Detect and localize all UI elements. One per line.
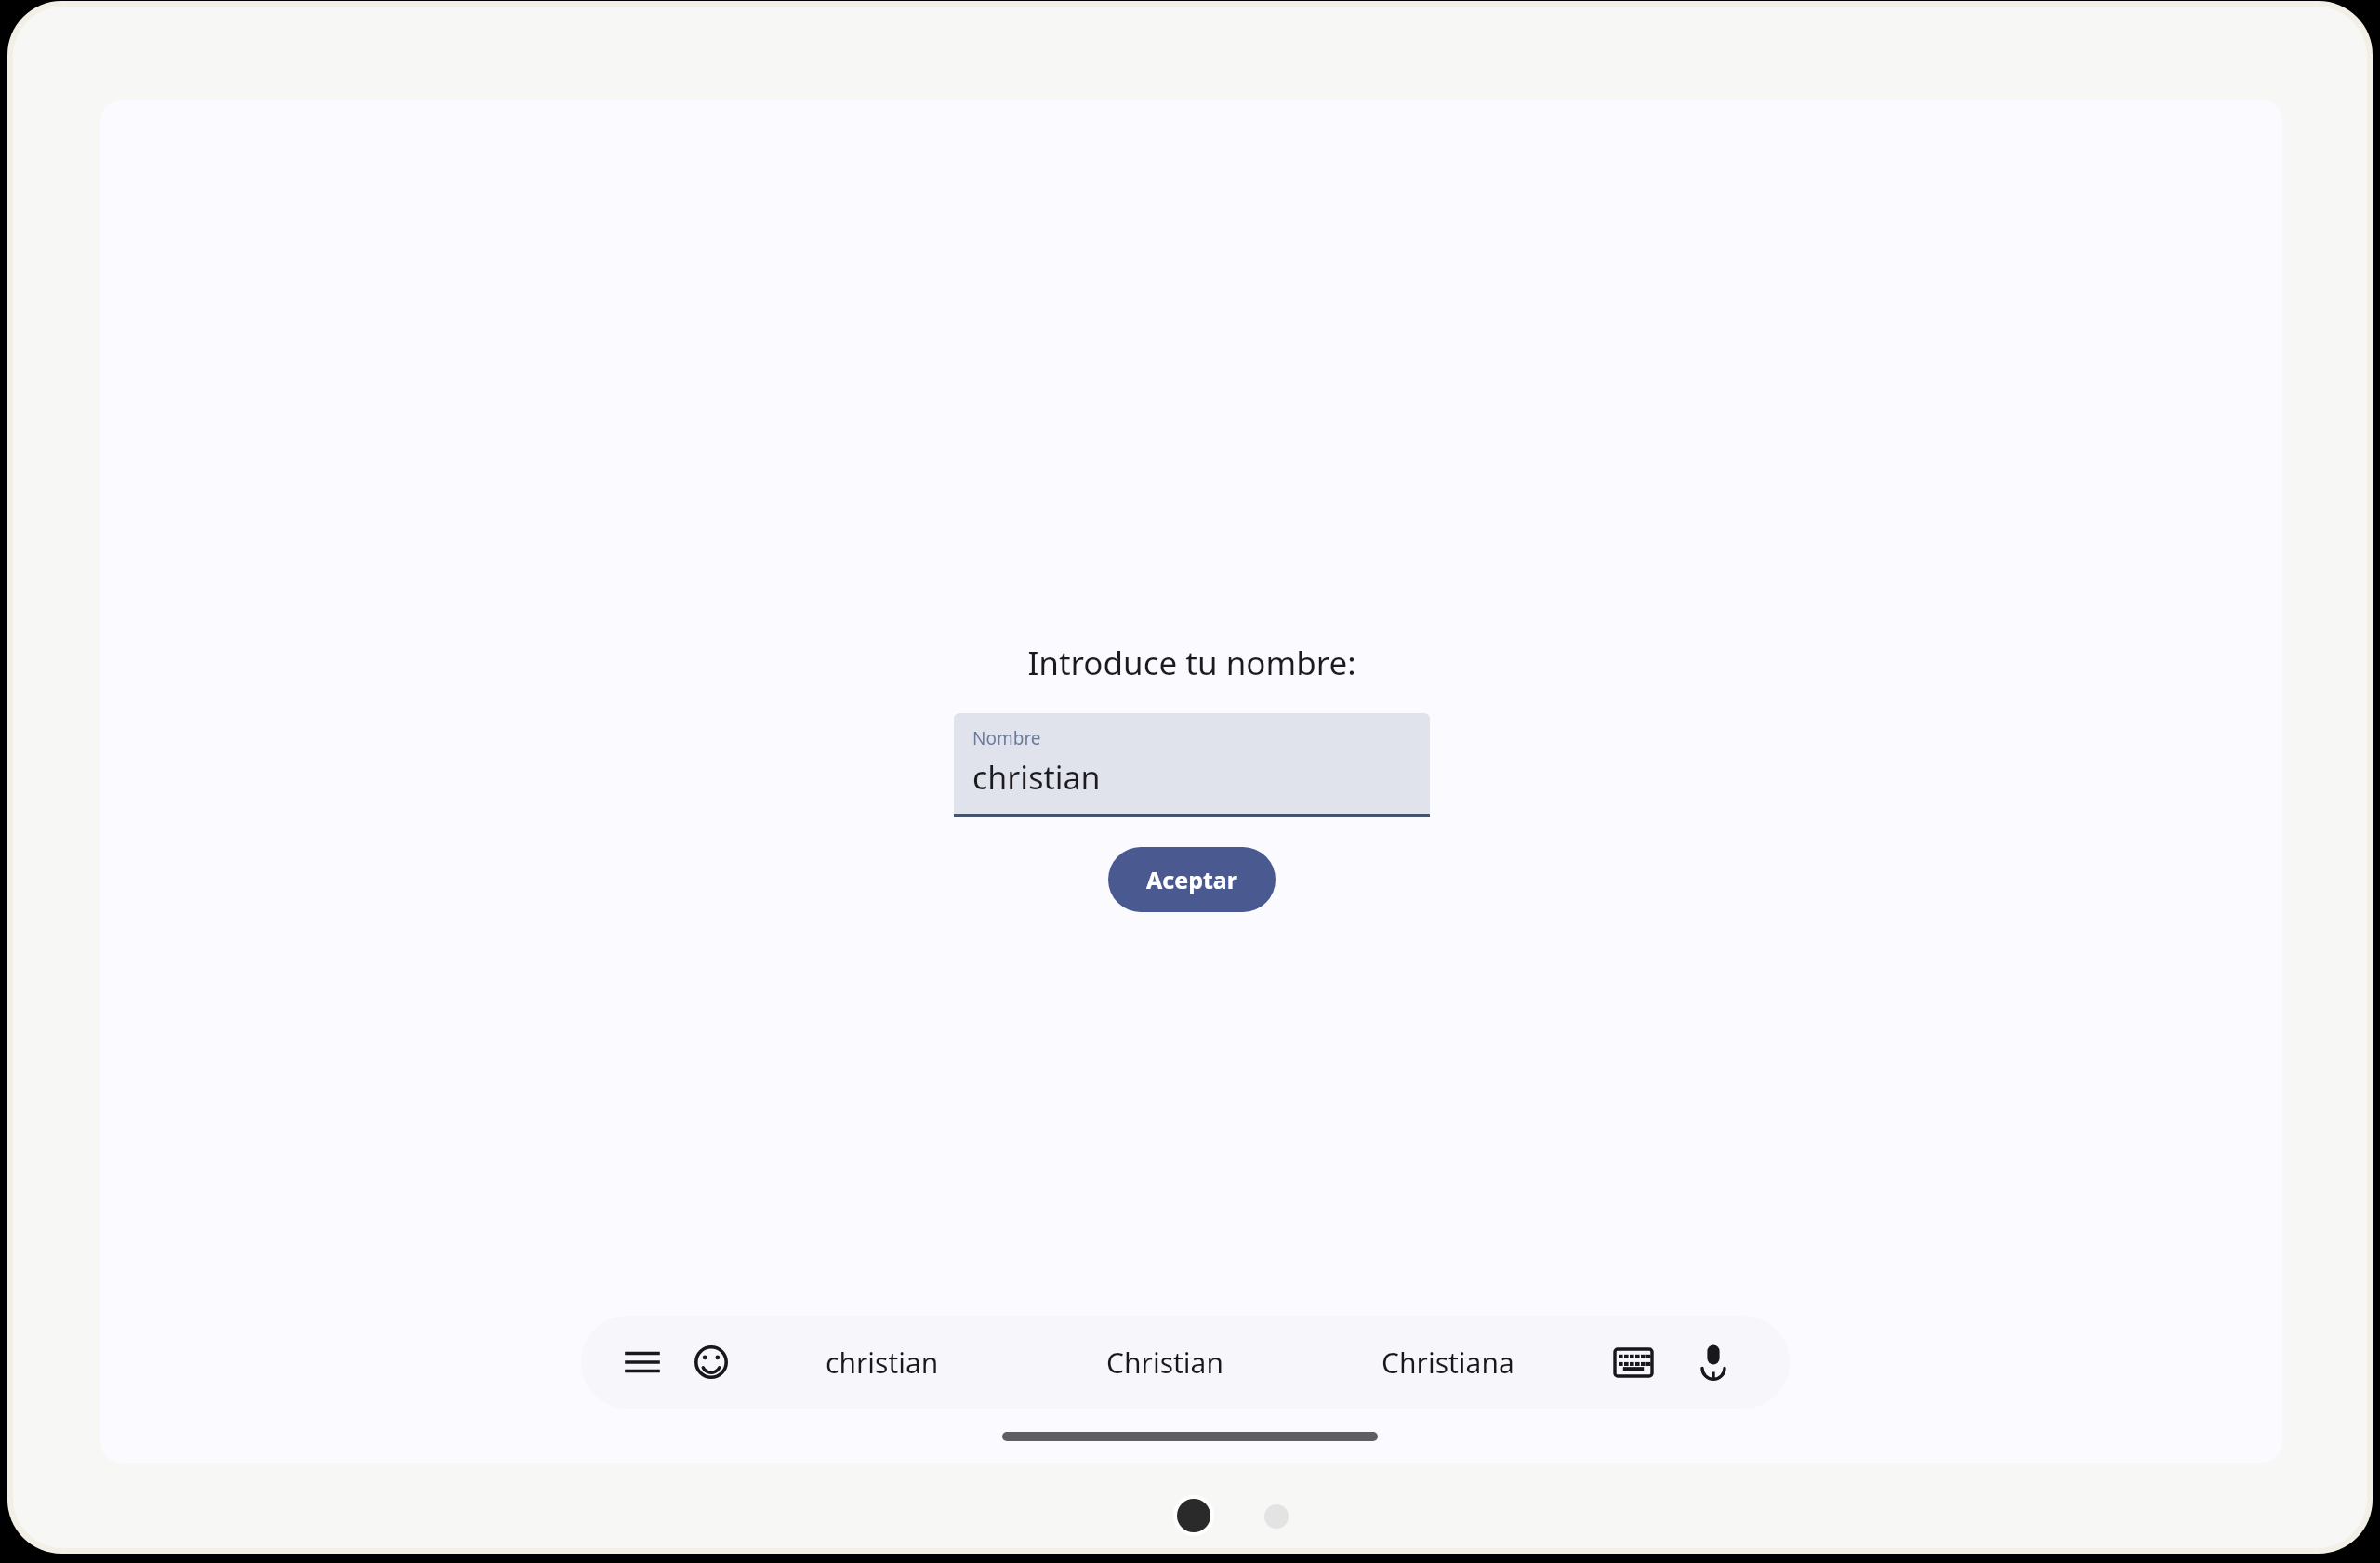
staticText: Introduce tu nombre: (1027, 641, 1356, 685)
button[interactable]: Christian (1024, 1316, 1306, 1409)
button[interactable]: Nombre (954, 713, 1430, 817)
button[interactable]: christian (741, 1316, 1024, 1409)
button[interactable]: Aceptar (1108, 847, 1276, 912)
staticText: Christian (1106, 1344, 1223, 1382)
button[interactable]: Switch keyboard (1604, 1332, 1663, 1392)
staticText: Christiana (1382, 1344, 1514, 1382)
button[interactable]: Christiana (1306, 1316, 1589, 1409)
staticText: christian (826, 1344, 939, 1382)
staticText: Nombre (972, 726, 1041, 750)
button[interactable]: Menu (613, 1332, 672, 1392)
staticText: Aceptar (1146, 864, 1237, 895)
button[interactable]: Voice input (1684, 1332, 1743, 1392)
button[interactable]: Emoji (681, 1332, 741, 1392)
staticText: christian (972, 756, 1101, 799)
